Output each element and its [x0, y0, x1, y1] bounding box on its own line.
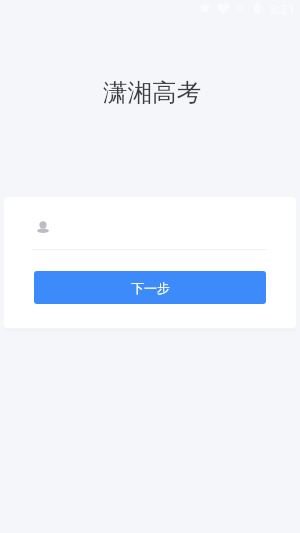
staticText: 下一步: [131, 280, 170, 296]
button[interactable]: Account input field: [37, 215, 268, 239]
staticText: 潇湘高考: [103, 77, 201, 108]
button[interactable]: 下一步: [34, 271, 266, 304]
